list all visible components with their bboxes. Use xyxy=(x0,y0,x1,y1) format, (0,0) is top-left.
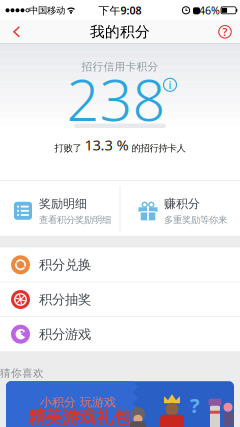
button[interactable] xyxy=(12,25,21,38)
staticText: ? xyxy=(222,25,227,39)
staticText: 238 xyxy=(66,61,165,137)
staticText: 中国移动 xyxy=(29,5,65,16)
staticText: 积分抽奖 xyxy=(39,291,91,308)
staticText: 赚积分 xyxy=(164,196,200,211)
button[interactable]: 积分兑换 xyxy=(0,248,240,282)
staticText: 猜你喜欢 xyxy=(0,367,44,380)
staticText: 积分游戏 xyxy=(39,326,91,342)
button[interactable]: 积分游戏 xyxy=(0,317,240,351)
button[interactable]: 赚积分 xyxy=(120,180,240,236)
staticText: 我的积分 xyxy=(90,23,150,41)
button[interactable]: ? xyxy=(6,381,234,427)
staticText: 46% xyxy=(199,3,220,17)
staticText: 奖励明细 xyxy=(39,196,87,211)
button[interactable]: 积分抽奖 xyxy=(0,282,240,316)
staticText: 招行信用卡积分 xyxy=(81,60,158,73)
button[interactable]: ? xyxy=(218,25,232,39)
staticText: 下午9:08 xyxy=(98,3,141,17)
staticText: 查看积分奖励明细 xyxy=(39,214,111,226)
staticText: 多重奖励等你来 xyxy=(164,214,227,226)
staticText: i xyxy=(168,78,171,92)
button[interactable]: i xyxy=(162,77,177,92)
staticText: ? xyxy=(190,392,200,418)
staticText: 小积分 玩游戏 xyxy=(40,395,116,409)
staticText: 积分兑换 xyxy=(39,257,91,273)
staticText: 打败了 13.3 % 的招行持卡人 xyxy=(54,135,185,155)
button[interactable]: 奖励明细 xyxy=(0,180,120,236)
staticText: 精美游戏礼包 xyxy=(28,407,130,427)
